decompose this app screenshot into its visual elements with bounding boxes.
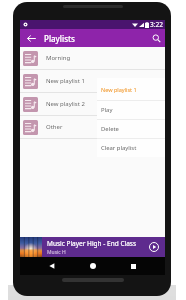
button[interactable]: Recents [125,258,141,274]
staticText: Music H [47,249,66,256]
button[interactable]: Clear playlist [97,139,165,157]
staticText: Music Player High - End Class [47,239,137,248]
button[interactable]: New playlist 2 [20,93,165,115]
button[interactable]: Search [147,29,165,47]
button[interactable]: New playlist 1 [20,70,165,92]
staticText: Delete [101,125,119,133]
button[interactable]: Morning [20,47,165,69]
staticText: Playlists [44,33,75,44]
button[interactable]: Music Player High - End Class [20,237,165,257]
staticText: New playlist 1 [46,77,85,85]
button[interactable]: Play [145,238,163,256]
button[interactable]: Play [97,101,165,119]
staticText: Play [101,106,113,114]
button[interactable]: Other [20,116,165,138]
button[interactable]: Delete [97,120,165,138]
staticText: New playlist 2 [46,100,85,108]
staticText: Other [46,123,63,131]
button[interactable]: Back [22,29,40,47]
button[interactable]: Home [85,258,101,274]
button[interactable]: Back [44,258,60,274]
staticText: Clear playlist [101,144,137,152]
staticText: Morning [46,54,71,62]
staticText: 3:22 [150,20,163,29]
staticText: New playlist 1 [101,86,137,93]
